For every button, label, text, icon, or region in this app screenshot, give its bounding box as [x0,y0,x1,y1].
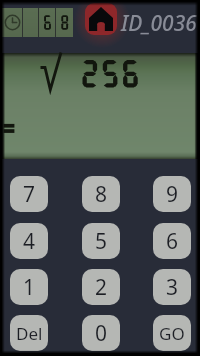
button[interactable]: 0 [82,315,120,351]
button[interactable]: 6 [153,223,191,259]
button[interactable]: 2 [82,269,120,305]
staticText: 3 [166,273,179,302]
staticText: 0 [95,319,108,348]
button[interactable]: 3 [153,269,191,305]
button[interactable]: Home [85,3,117,35]
staticText: GO [159,322,185,345]
button[interactable]: 9 [153,176,191,212]
button[interactable]: 5 [82,223,120,259]
staticText: 7 [23,180,36,209]
button[interactable]: GO [153,315,191,351]
staticText: 1 [23,273,36,302]
staticText: 4 [23,227,36,256]
button[interactable]: Del [10,315,48,351]
staticText: 8 [95,180,108,209]
staticText: 6 [166,227,179,256]
button[interactable]: 4 [10,223,48,259]
staticText: 9 [166,180,179,209]
button[interactable]: 1 [10,269,48,305]
staticText: 2 [95,273,108,302]
staticText: ID_0036 [121,9,197,38]
button[interactable]: 8 [82,176,120,212]
staticText: 5 [95,227,108,256]
button[interactable]: 7 [10,176,48,212]
staticText: Del [16,322,43,345]
